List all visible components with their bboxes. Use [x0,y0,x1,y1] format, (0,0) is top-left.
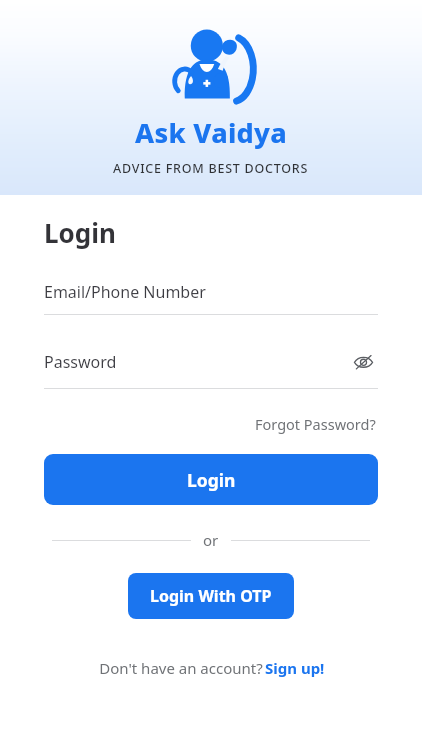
button[interactable]: Forgot Password? [253,411,378,437]
staticText: Forgot Password? [255,414,376,434]
staticText: Ask Vaidya [135,114,288,151]
button[interactable]: Sign up! [265,658,325,678]
staticText: Login With OTP [150,585,272,607]
staticText: Email/Phone Number [44,281,378,303]
staticText: Sign up! [265,658,325,678]
staticText: or [203,530,219,550]
staticText: Login [187,468,236,492]
button[interactable]: Show password [348,347,378,377]
staticText: ADVICE FROM BEST DOCTORS [113,160,309,177]
staticText: Login [44,215,116,250]
button[interactable]: Login With OTP [128,573,294,619]
staticText: Don't have an account? [97,658,265,678]
button[interactable]: Login [44,454,378,505]
staticText: Password [44,351,348,373]
